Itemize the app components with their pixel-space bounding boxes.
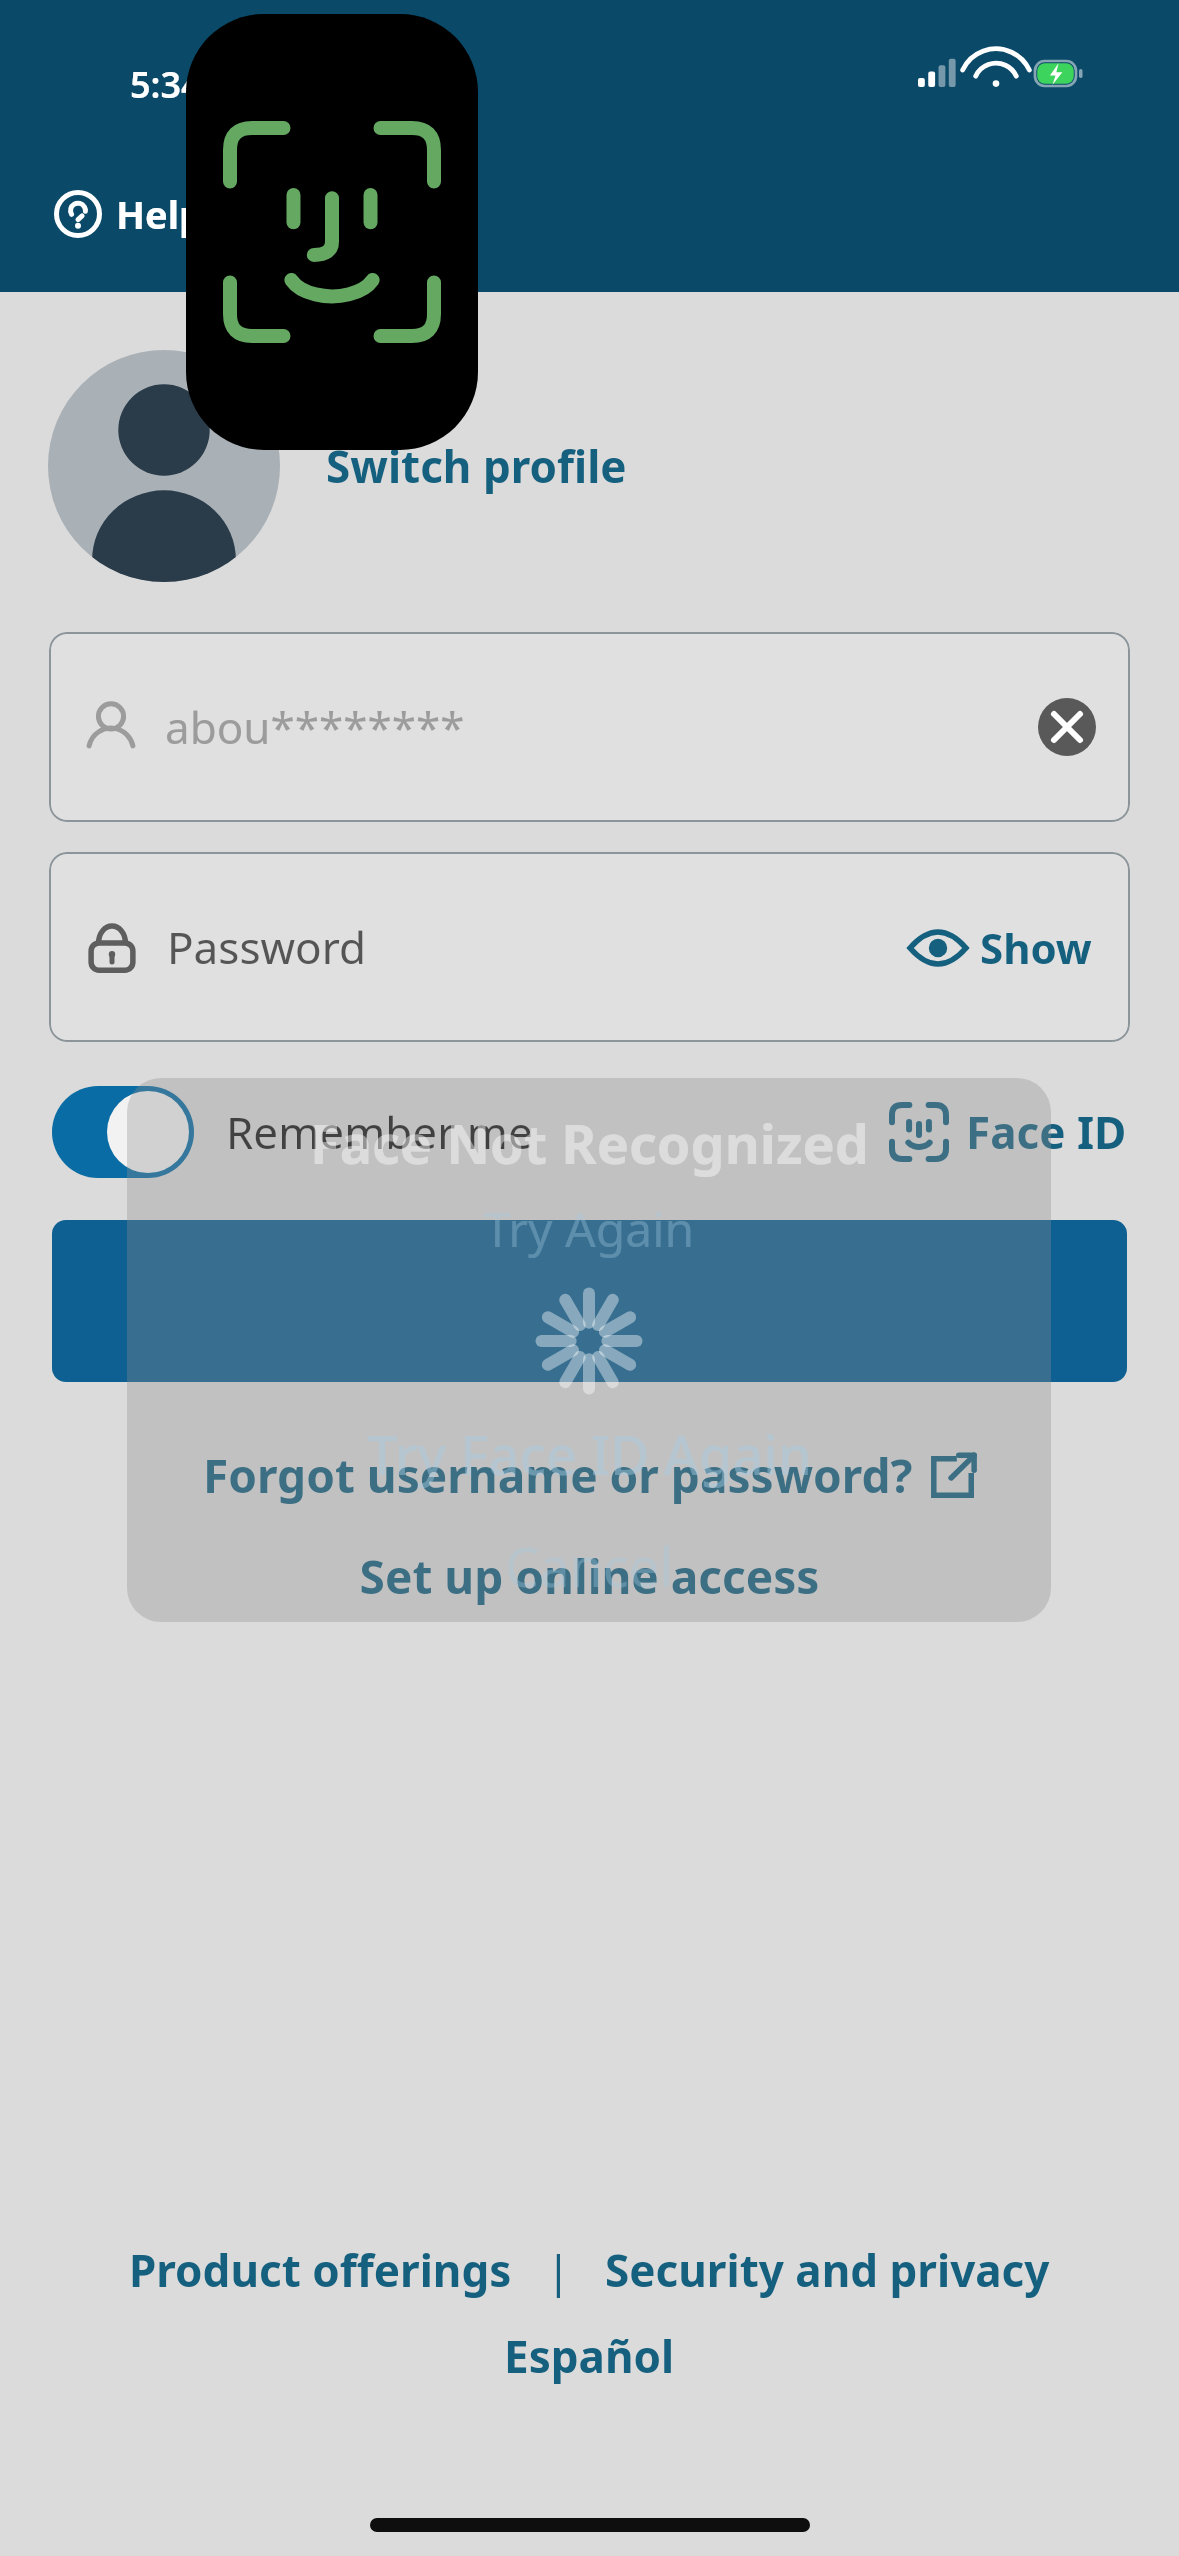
button[interactable]: Forgot username or password?	[0, 1444, 1179, 1507]
staticText: |	[512, 2240, 605, 2300]
staticText: Face Not Recognized	[310, 1106, 869, 1180]
button[interactable]: Product offerings	[129, 2240, 512, 2300]
button[interactable]: Help	[50, 182, 208, 246]
button[interactable]: Remember me	[52, 1086, 533, 1178]
button[interactable]: Clear username	[1038, 698, 1096, 756]
button[interactable]: Switch profile	[320, 430, 633, 502]
button[interactable]: Security and privacy	[605, 2240, 1050, 2300]
staticText: Show	[980, 919, 1092, 976]
staticText: Try Face ID Again	[367, 1417, 812, 1491]
button[interactable]: Set up online access	[0, 1545, 1179, 1608]
button[interactable]: Sign on	[52, 1220, 1127, 1382]
button[interactable]: abou********	[49, 632, 1130, 822]
button[interactable]: Face ID	[888, 1101, 1127, 1163]
staticText: Cancel	[505, 1529, 674, 1603]
staticText: Password	[167, 917, 367, 977]
staticText: Remember me	[226, 1102, 533, 1162]
button[interactable]: Español	[504, 2326, 675, 2386]
button[interactable]: Face ID	[186, 14, 478, 450]
staticText: Help	[116, 188, 204, 240]
staticText: Face ID	[966, 1102, 1127, 1162]
button[interactable]: Password	[49, 852, 1130, 1042]
staticText: Forgot username or password?	[203, 1444, 913, 1507]
staticText: Try Again	[484, 1196, 695, 1261]
button[interactable]: Show	[904, 915, 1096, 980]
staticText: 5:34	[130, 60, 202, 109]
staticText: abou********	[165, 697, 465, 757]
